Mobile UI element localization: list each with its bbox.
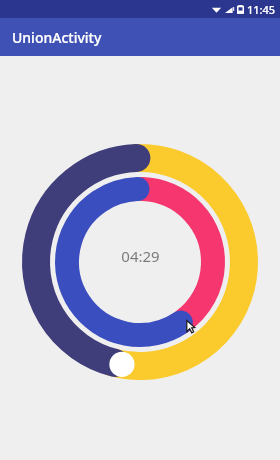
staticText: 11:45 — [247, 2, 276, 17]
staticText: 04:29 — [121, 246, 160, 266]
button[interactable]: 04:29 — [0, 56, 280, 460]
staticText: UnionActivity — [12, 28, 102, 47]
